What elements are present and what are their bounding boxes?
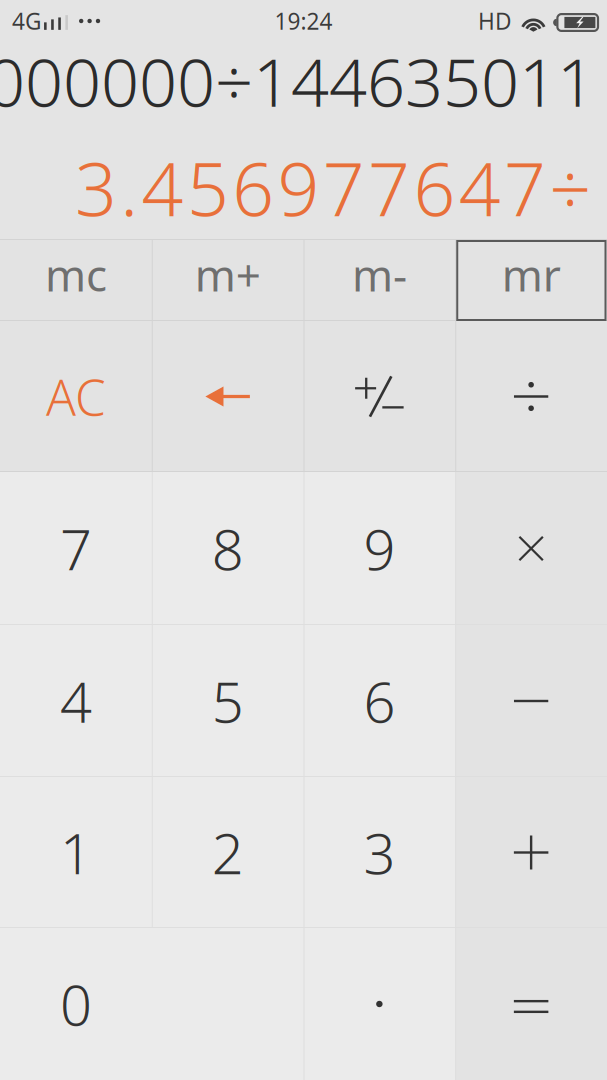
button[interactable]: 8: [152, 472, 304, 625]
staticText: 3: [363, 815, 395, 890]
button[interactable]: 1: [0, 777, 152, 928]
button[interactable]: 5: [152, 625, 304, 777]
button[interactable]: Decimal point: [303, 928, 455, 1080]
staticText: AC: [46, 364, 106, 429]
staticText: 3.456977647÷: [75, 139, 591, 236]
staticText: 5000000÷144635011: [0, 37, 595, 125]
button[interactable]: 2: [152, 777, 304, 928]
button[interactable]: Add: [455, 777, 607, 928]
staticText: 4: [60, 664, 92, 738]
staticText: m+: [195, 245, 261, 304]
button[interactable]: mr: [455, 240, 607, 321]
button[interactable]: 6: [303, 625, 455, 777]
staticText: 6: [363, 664, 395, 738]
staticText: mr: [502, 245, 561, 304]
button[interactable]: 3: [303, 777, 455, 928]
staticText: 4G: [12, 6, 42, 36]
staticText: 19:24: [274, 6, 332, 36]
button[interactable]: Multiply: [455, 472, 607, 625]
button[interactable]: mc: [0, 240, 152, 321]
button[interactable]: Equals: [455, 928, 607, 1080]
staticText: 7: [60, 511, 92, 586]
button[interactable]: m+: [152, 240, 304, 321]
staticText: mc: [45, 245, 107, 304]
staticText: 1: [60, 815, 92, 890]
staticText: m-: [352, 245, 407, 304]
button[interactable]: AC: [0, 321, 152, 472]
button[interactable]: Backspace: [152, 321, 304, 472]
button[interactable]: 9: [303, 472, 455, 625]
staticText: 8: [212, 511, 244, 586]
button[interactable]: m-: [303, 240, 455, 321]
button[interactable]: Subtract: [455, 625, 607, 777]
button[interactable]: Divide: [455, 321, 607, 472]
button[interactable]: 4: [0, 625, 152, 777]
staticText: 5: [212, 664, 244, 738]
staticText: HD: [478, 6, 512, 36]
staticText: 9: [363, 511, 395, 586]
staticText: 0: [60, 967, 92, 1041]
staticText: 2: [212, 815, 244, 890]
button[interactable]: Plus minus: [303, 321, 455, 472]
button[interactable]: 0: [0, 928, 303, 1080]
button[interactable]: 7: [0, 472, 152, 625]
